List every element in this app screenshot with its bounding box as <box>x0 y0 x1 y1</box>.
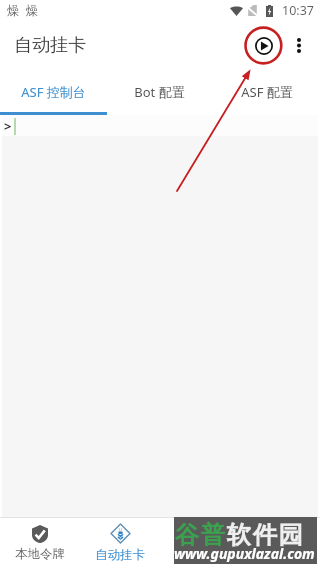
staticText: > <box>4 117 12 135</box>
button[interactable]: 自动挂卡 <box>80 518 160 568</box>
button[interactable]: 本地令牌 <box>0 518 80 568</box>
staticText: Bot 配置 <box>134 83 185 101</box>
staticText: 自动挂卡 <box>95 547 145 563</box>
staticText: www.gupuxlazal.com <box>174 544 315 563</box>
staticText: 本地令牌 <box>15 546 65 562</box>
staticText: 燥 燥 <box>7 2 40 19</box>
staticText: ASF 控制台 <box>21 83 86 101</box>
button[interactable]: ASF 配置 <box>213 69 320 115</box>
staticText: ASF 配置 <box>241 83 293 101</box>
staticText: 谷普 <box>175 520 227 550</box>
staticText: 自动挂卡 <box>14 34 86 57</box>
staticText: 软件园 <box>227 520 305 550</box>
button[interactable]: Bot 配置 <box>106 69 213 115</box>
button[interactable]: More options <box>281 27 317 63</box>
button[interactable]: Start <box>244 26 284 66</box>
button[interactable]: ASF 控制台 <box>0 69 106 115</box>
staticText: 10:37 <box>282 2 314 19</box>
